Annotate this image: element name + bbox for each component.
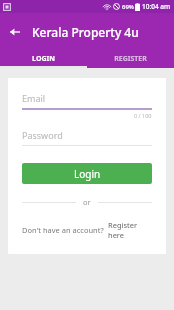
button[interactable]: REGISTER bbox=[87, 50, 174, 68]
staticText: LOGIN bbox=[32, 54, 55, 64]
staticText: REGISTER bbox=[114, 54, 147, 64]
button[interactable]: Don't have an account? bbox=[22, 220, 152, 240]
staticText: or bbox=[83, 197, 91, 207]
button[interactable]: Password bbox=[22, 129, 152, 146]
staticText: Kerala Property 4u bbox=[32, 24, 139, 40]
button[interactable]: Back bbox=[4, 21, 26, 43]
staticText: 69% bbox=[122, 3, 134, 11]
button[interactable]: Email bbox=[22, 92, 152, 110]
staticText: 0 / 100 bbox=[134, 112, 152, 119]
staticText: Password bbox=[22, 129, 63, 141]
staticText: 10:04 am bbox=[142, 2, 171, 11]
staticText: Email bbox=[22, 92, 46, 104]
button[interactable]: LOGIN bbox=[0, 50, 87, 68]
staticText: Register here bbox=[108, 220, 152, 240]
staticText: Don't have an account? bbox=[22, 225, 104, 235]
button[interactable]: Login bbox=[22, 163, 152, 184]
staticText: Login bbox=[74, 167, 101, 181]
